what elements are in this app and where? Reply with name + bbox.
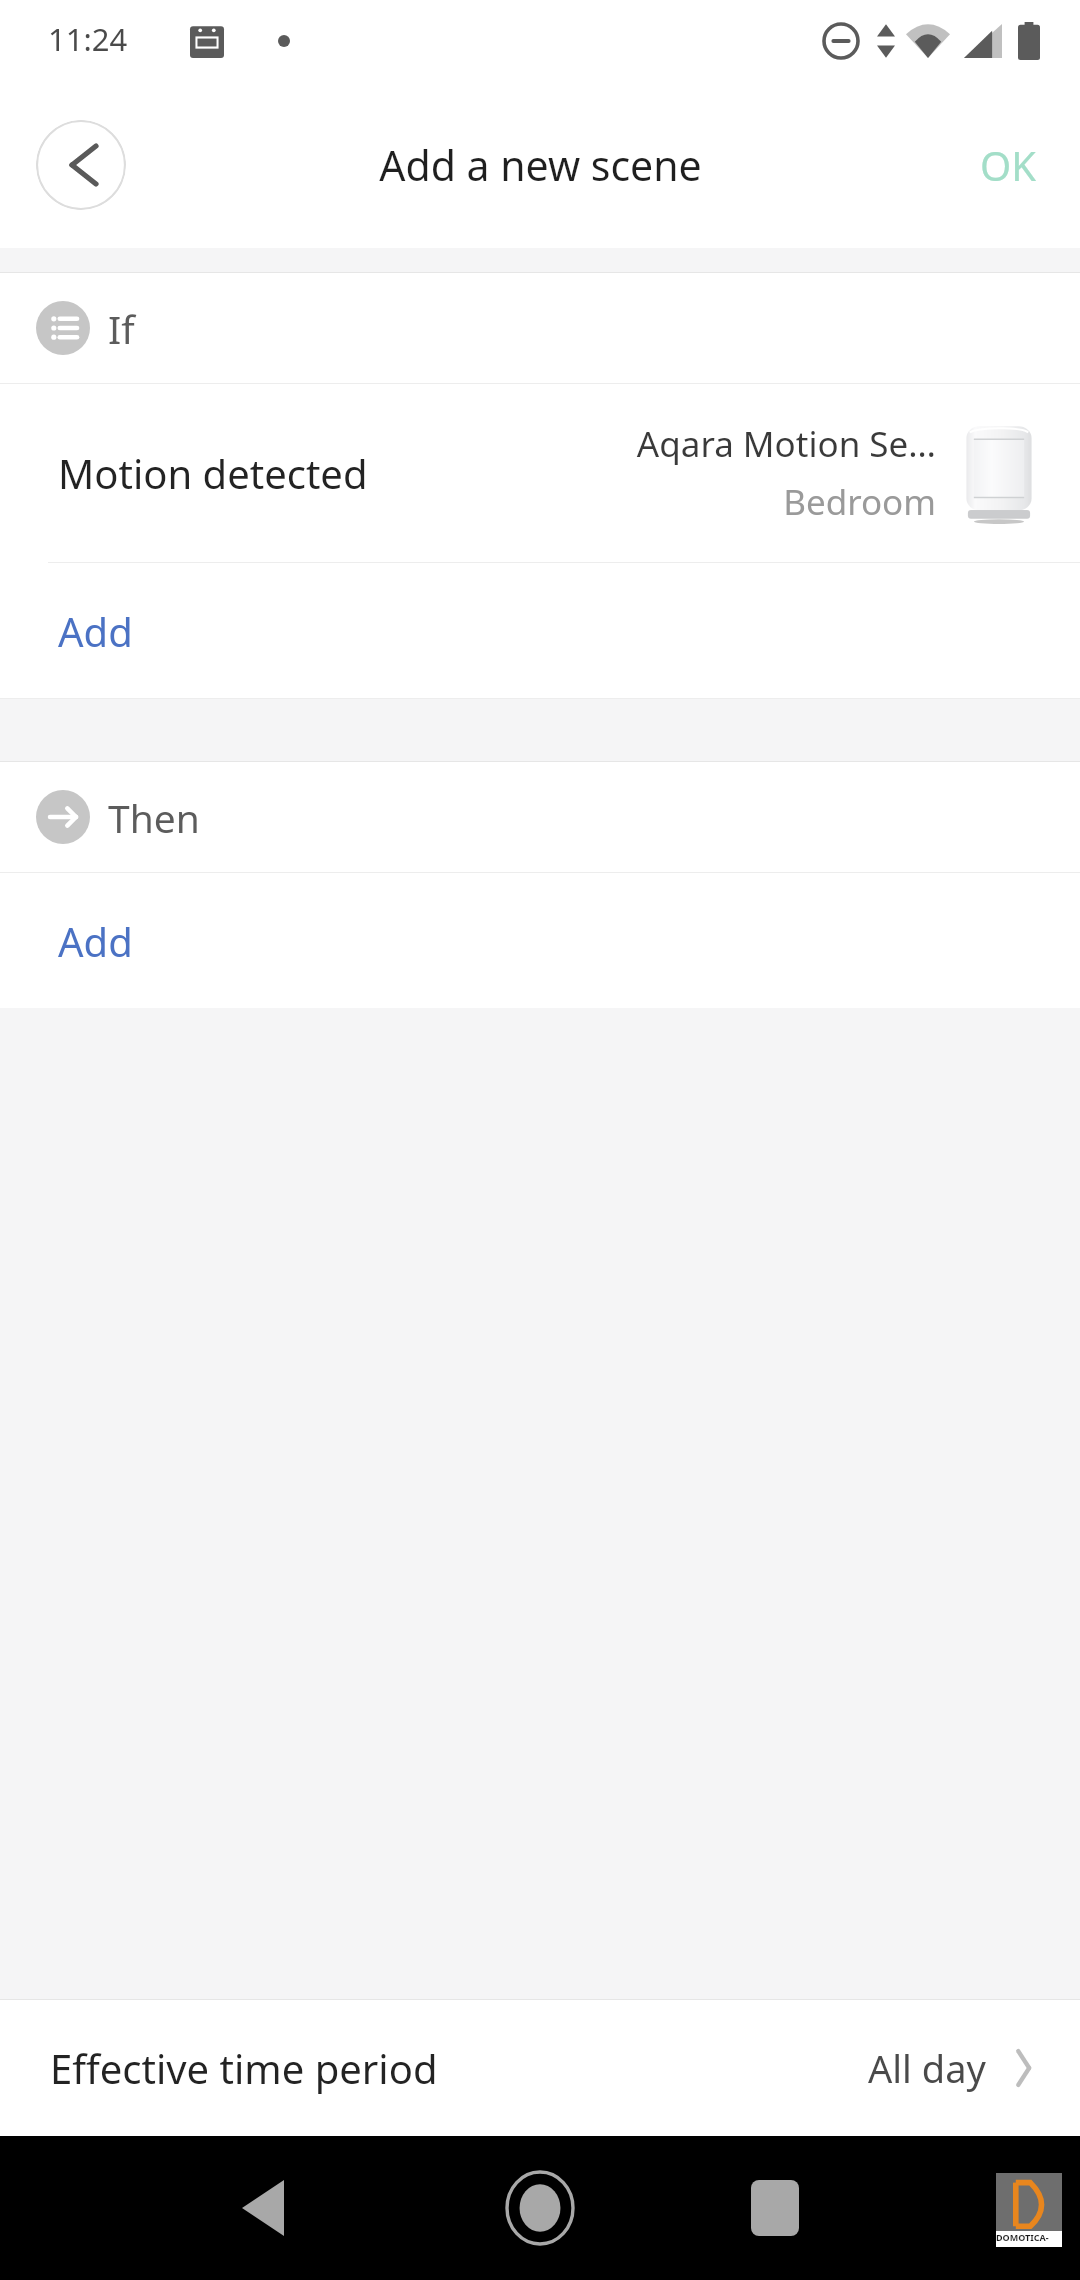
staticText: Motion detected	[58, 446, 368, 500]
staticText: OK	[980, 138, 1036, 192]
staticText: If	[108, 302, 135, 355]
staticText: Effective time period	[50, 2041, 438, 2095]
staticText: DOMOTICA-BLOG.NL	[996, 2231, 1062, 2247]
button[interactable]: Effective time period	[0, 2000, 1080, 2136]
staticText: 11:24	[48, 18, 128, 60]
button[interactable]: Home	[480, 2148, 600, 2268]
staticText: Add a new scene	[379, 137, 702, 193]
button[interactable]: Recent apps	[720, 2153, 830, 2263]
staticText: Aqara Motion Se…	[636, 420, 936, 468]
button[interactable]: Then	[0, 762, 1080, 872]
button[interactable]: OK	[936, 120, 1080, 210]
button[interactable]: Back	[36, 120, 126, 210]
button[interactable]: Add	[0, 563, 1080, 698]
staticText: Add	[58, 914, 133, 968]
staticText: Then	[108, 791, 200, 844]
staticText: Add	[58, 604, 133, 658]
button[interactable]: Motion detected	[0, 384, 1080, 562]
button[interactable]: Add	[0, 873, 1080, 1008]
staticText: All day	[868, 2042, 986, 2094]
button[interactable]: If	[0, 273, 1080, 383]
button[interactable]: Back	[208, 2153, 318, 2263]
staticText: Bedroom	[783, 478, 936, 526]
